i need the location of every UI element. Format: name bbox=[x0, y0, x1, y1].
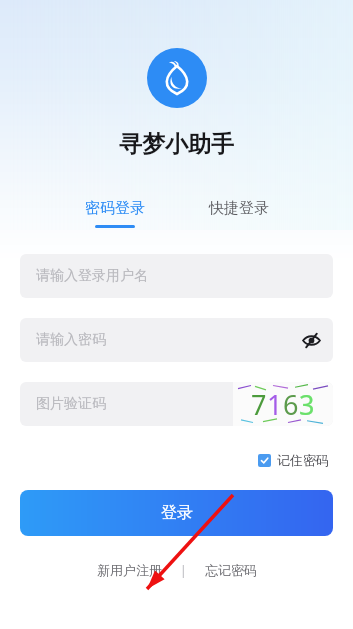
staticText: 记住密码 bbox=[277, 452, 329, 468]
staticText: 请输入登录用户名 bbox=[36, 267, 148, 285]
staticText: 7 bbox=[251, 386, 267, 423]
button[interactable]: 忘记密码 bbox=[199, 558, 263, 582]
staticText: 请输入密码 bbox=[36, 331, 289, 349]
staticText: 寻梦小助手 bbox=[119, 130, 234, 159]
staticText: 1 bbox=[267, 386, 283, 423]
staticText: 图片验证码 bbox=[36, 395, 106, 413]
button[interactable]: 图片验证码 bbox=[20, 382, 233, 426]
button[interactable]: Refresh captcha bbox=[233, 382, 333, 426]
staticText: 密码登录 bbox=[85, 199, 145, 218]
button[interactable]: Show password bbox=[289, 318, 333, 362]
staticText: 3 bbox=[299, 386, 315, 423]
staticText: 新用户注册 bbox=[97, 562, 162, 578]
staticText: 登录 bbox=[161, 503, 193, 523]
button[interactable]: 请输入登录用户名 bbox=[20, 254, 333, 298]
button[interactable]: 新用户注册 bbox=[91, 558, 168, 582]
button[interactable]: 登录 bbox=[20, 490, 333, 536]
staticText: | bbox=[180, 562, 187, 578]
staticText: 忘记密码 bbox=[205, 562, 257, 578]
staticText: 快捷登录 bbox=[209, 199, 269, 218]
button[interactable]: 记住密码 bbox=[254, 448, 333, 472]
button[interactable]: 密码登录 bbox=[73, 195, 157, 232]
staticText: 6 bbox=[283, 386, 299, 423]
button[interactable]: 快捷登录 bbox=[197, 195, 281, 232]
